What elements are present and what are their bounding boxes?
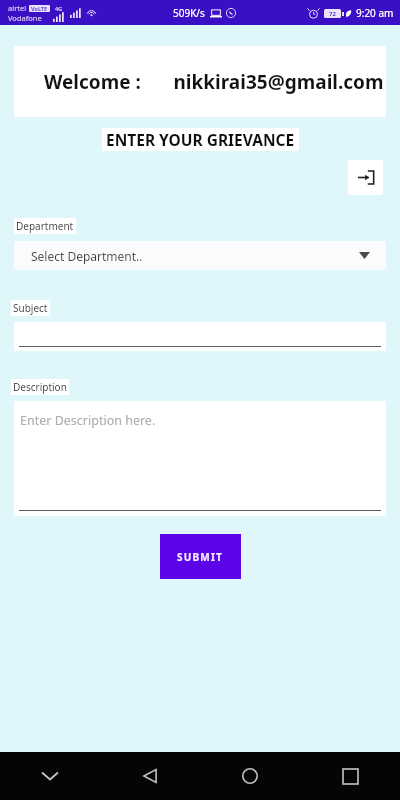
staticText: Welcome : <box>44 69 141 95</box>
button[interactable]: Back <box>100 752 200 800</box>
button[interactable]: Home <box>200 752 300 800</box>
button[interactable]: SUBMIT <box>160 534 241 579</box>
staticText: Select Department.. <box>31 248 143 264</box>
staticText: SUBMIT <box>177 550 224 564</box>
staticText: 4G <box>55 5 63 12</box>
staticText: nikkirai35@gmail.com <box>173 69 384 95</box>
button[interactable]: Select Department.. <box>14 241 386 270</box>
button[interactable] <box>14 322 386 351</box>
button[interactable]: Welcome : <box>14 46 386 117</box>
staticText: airtel <box>8 3 27 13</box>
staticText: Description <box>13 380 67 394</box>
button[interactable]: Enter Description here. <box>14 401 386 516</box>
button[interactable]: Recents <box>300 752 400 800</box>
button[interactable]: Logout <box>348 160 383 195</box>
staticText: 9:20 am <box>356 6 394 20</box>
staticText: 509K/s <box>173 6 205 20</box>
staticText: Vodafone <box>8 13 42 23</box>
staticText: VoLTE <box>31 5 48 12</box>
staticText: Subject <box>13 301 48 315</box>
staticText: Department <box>16 219 74 233</box>
staticText: 72 <box>329 10 336 18</box>
staticText: Enter Description here. <box>20 412 156 429</box>
button[interactable]: Hide keyboard <box>0 752 100 800</box>
staticText: ENTER YOUR GRIEVANCE <box>106 129 295 150</box>
